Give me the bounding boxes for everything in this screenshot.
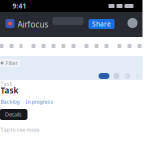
staticText: Share bbox=[92, 19, 111, 29]
staticText: Tap to see more bbox=[0, 126, 39, 133]
staticText: Task bbox=[0, 85, 18, 96]
staticText: Filter bbox=[5, 59, 17, 67]
button[interactable]: Account bbox=[127, 18, 137, 28]
button[interactable]: Backlog bbox=[0, 98, 19, 105]
staticText: In progress bbox=[25, 98, 53, 105]
staticText: Backlog bbox=[0, 98, 19, 105]
staticText: Details bbox=[5, 111, 22, 118]
staticText: 9:41 bbox=[12, 1, 26, 11]
staticText: Task bbox=[0, 80, 12, 87]
button[interactable]: Filter bbox=[0, 59, 20, 67]
button[interactable]: In progress bbox=[25, 98, 53, 105]
button[interactable]: Search bbox=[52, 17, 83, 25]
button[interactable]: Share bbox=[88, 19, 114, 29]
button[interactable]: Workspace bbox=[5, 19, 14, 28]
button[interactable]: Details bbox=[0, 109, 27, 120]
staticText: Airfocus bbox=[17, 19, 48, 30]
